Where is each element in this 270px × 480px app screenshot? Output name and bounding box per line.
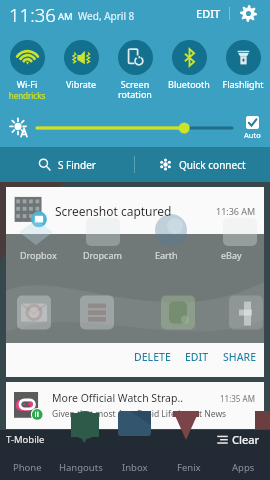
button[interactable]: Clear xyxy=(214,430,263,449)
button[interactable]: Apps xyxy=(216,450,270,480)
staticText: Dropcam xyxy=(83,249,122,261)
button[interactable]: Brightness xyxy=(10,118,30,138)
button[interactable]: S Finder xyxy=(0,147,134,182)
button[interactable]: EDIT xyxy=(178,343,216,371)
button[interactable]: SHARE xyxy=(216,343,263,371)
button[interactable]: Screenshot captured xyxy=(6,187,264,234)
button[interactable]: Fenix xyxy=(162,450,216,480)
button[interactable]: Quick connect xyxy=(135,147,270,182)
button[interactable]: More Official Watch Strap.. xyxy=(6,382,264,429)
staticText: Quick connect xyxy=(179,158,246,172)
staticText: Hangouts xyxy=(59,461,103,474)
staticText: Wi-Fi xyxy=(0,78,54,90)
staticText: DELETE xyxy=(134,350,171,364)
staticText: Flashlight xyxy=(216,78,270,90)
staticText: Bluetooth xyxy=(162,78,216,90)
staticText: Auto xyxy=(244,130,261,140)
button[interactable]: Inbox xyxy=(108,450,162,480)
staticText: Inbox xyxy=(122,461,148,474)
staticText: Vibrate xyxy=(54,78,108,90)
button[interactable]: EDIT xyxy=(192,2,225,25)
button[interactable]: Bluetooth xyxy=(162,26,216,90)
staticText: T-Mobile xyxy=(6,433,45,446)
staticText: Dropbox xyxy=(20,249,57,261)
staticText: 11:35 AM xyxy=(220,393,255,404)
button[interactable]: Phone xyxy=(0,450,54,480)
staticText: Phone xyxy=(13,461,42,474)
staticText: 11:36 xyxy=(9,2,56,27)
staticText: Earth xyxy=(155,249,178,261)
staticText: EDIT xyxy=(185,350,209,364)
staticText: Clear xyxy=(232,432,260,447)
staticText: eBay xyxy=(221,249,242,261)
staticText: Fenix xyxy=(177,461,201,474)
staticText: 11:36 AM xyxy=(216,205,256,217)
button[interactable]: Vibrate xyxy=(54,26,108,90)
staticText: Wed, April 8 xyxy=(78,9,135,23)
staticText: AM xyxy=(58,10,73,23)
staticText: Screenshot captured xyxy=(55,203,216,219)
staticText: SHARE xyxy=(223,350,256,364)
button[interactable]: Hangouts xyxy=(54,450,108,480)
button[interactable]: Settings xyxy=(237,2,259,24)
button[interactable]: Screen rotation xyxy=(108,26,162,100)
staticText: EDIT xyxy=(196,6,221,21)
button[interactable] xyxy=(37,120,232,136)
button[interactable]: Auto xyxy=(242,116,263,140)
staticText: Droid Life Latest News xyxy=(137,408,227,420)
button[interactable]: DELETE xyxy=(127,343,178,371)
staticText: hendricks xyxy=(0,90,54,101)
staticText: Apps xyxy=(232,461,255,474)
staticText: More Official Watch Strap.. xyxy=(52,391,220,405)
staticText: S Finder xyxy=(58,158,96,172)
button[interactable]: Wi-Fi xyxy=(0,26,54,101)
button[interactable]: Flashlight xyxy=(216,26,270,90)
staticText: Given that most A.. xyxy=(52,408,128,420)
staticText: Screen rotation xyxy=(108,78,162,100)
